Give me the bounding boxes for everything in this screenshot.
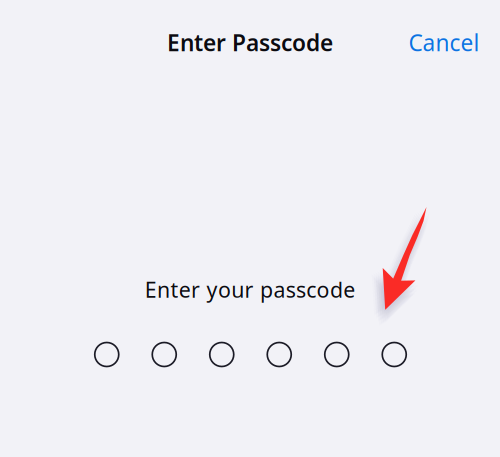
staticText: Enter your passcode <box>145 275 355 304</box>
button[interactable]: Passcode <box>95 342 406 366</box>
staticText: Enter Passcode <box>167 27 333 57</box>
button[interactable]: Cancel <box>398 19 489 65</box>
staticText: Cancel <box>408 27 479 57</box>
